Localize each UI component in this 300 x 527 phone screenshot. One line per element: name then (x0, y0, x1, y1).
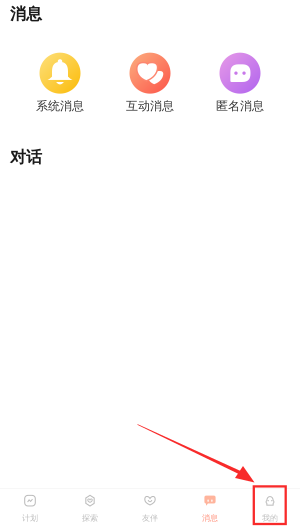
button[interactable]: 系统消息 (15, 53, 105, 113)
button[interactable]: 友伴 (120, 489, 180, 527)
staticText: 消息 (10, 4, 42, 24)
button[interactable]: 互动消息 (105, 53, 195, 113)
button[interactable]: 探索 (60, 489, 120, 527)
staticText: 友伴 (142, 513, 158, 523)
staticText: 消息 (202, 513, 218, 523)
button[interactable]: 匿名消息 (195, 53, 285, 113)
staticText: 我的 (262, 513, 278, 523)
button[interactable]: 我的 (240, 489, 300, 527)
staticText: 计划 (22, 513, 38, 523)
staticText: 对话 (10, 147, 42, 167)
button[interactable]: 计划 (0, 489, 60, 527)
button[interactable]: 消息 (180, 489, 240, 527)
staticText: 互动消息 (126, 99, 174, 113)
staticText: 探索 (82, 513, 98, 523)
staticText: 系统消息 (36, 99, 84, 113)
staticText: 匿名消息 (216, 99, 264, 113)
